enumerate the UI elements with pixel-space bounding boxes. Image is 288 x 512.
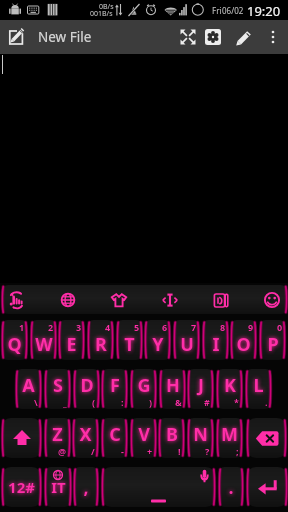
- staticText: R: [95, 332, 107, 357]
- button[interactable]: [130, 418, 157, 458]
- other: Shift: [1, 418, 42, 458]
- staticText: G: [137, 373, 151, 398]
- button[interactable]: [216, 369, 243, 409]
- button[interactable]: [87, 320, 114, 360]
- staticText: !: [178, 445, 181, 457]
- button[interactable]: Cursor: [153, 285, 187, 314]
- button[interactable]: [1, 418, 42, 458]
- button[interactable]: [1, 320, 28, 360]
- staticText: J: [198, 373, 204, 398]
- button[interactable]: Settings: [204, 28, 222, 46]
- button[interactable]: [116, 320, 143, 360]
- staticText: _: [63, 396, 67, 408]
- button[interactable]: [1, 467, 42, 507]
- button[interactable]: More options: [264, 28, 282, 46]
- staticText: E: [66, 332, 77, 357]
- button[interactable]: Clipboard: [204, 285, 238, 314]
- button[interactable]: [73, 467, 99, 507]
- staticText: P: [267, 332, 279, 357]
- staticText: T: [124, 332, 135, 357]
- button[interactable]: [202, 320, 229, 360]
- button[interactable]: [44, 369, 71, 409]
- button[interactable]: [187, 418, 214, 458]
- button[interactable]: [159, 369, 186, 409]
- staticText: C: [109, 422, 121, 447]
- staticText: N: [193, 422, 208, 447]
- staticText: 0: [277, 321, 283, 333]
- staticText: .: [228, 475, 234, 500]
- button[interactable]: Theme: [102, 285, 136, 314]
- button[interactable]: [101, 467, 216, 507]
- other: Enter: [246, 467, 288, 507]
- staticText: I: [212, 332, 220, 357]
- button[interactable]: [1, 285, 288, 314]
- button[interactable]: [218, 467, 244, 507]
- button[interactable]: [246, 467, 288, 507]
- staticText: 12#: [8, 477, 35, 497]
- button[interactable]: [101, 418, 128, 458]
- button[interactable]: [73, 369, 100, 409]
- staticText: :: [121, 396, 124, 408]
- staticText: 8: [220, 321, 226, 333]
- staticText: B: [166, 422, 178, 447]
- button[interactable]: [58, 320, 85, 360]
- staticText: 19:20: [247, 2, 281, 20]
- staticText: New File: [38, 28, 92, 46]
- button[interactable]: [230, 320, 257, 360]
- staticText: 5: [134, 321, 140, 333]
- button[interactable]: [158, 418, 185, 458]
- button[interactable]: [259, 320, 286, 360]
- button[interactable]: [130, 369, 157, 409]
- staticText: &: [175, 396, 182, 408]
- button[interactable]: Language: [51, 285, 85, 314]
- staticText: 001B/s: [90, 9, 113, 19]
- staticText: \: [34, 396, 38, 408]
- button[interactable]: Emoji: [255, 285, 288, 314]
- staticText: Fri: [212, 5, 222, 16]
- staticText: Q: [7, 332, 22, 357]
- button[interactable]: [30, 320, 57, 360]
- button[interactable]: [246, 418, 287, 458]
- staticText: V: [138, 422, 150, 447]
- staticText: Z: [52, 422, 63, 447]
- staticText: R: [95, 332, 107, 357]
- button[interactable]: Edit: [234, 28, 254, 48]
- button[interactable]: [101, 369, 128, 409]
- staticText: D: [80, 373, 94, 398]
- button[interactable]: [245, 369, 272, 409]
- staticText: 7: [191, 321, 197, 333]
- staticText: T: [124, 332, 135, 357]
- staticText: Y: [152, 332, 164, 357]
- staticText: H: [166, 373, 180, 398]
- staticText: U: [180, 332, 194, 357]
- staticText: +: [147, 445, 153, 457]
- staticText: S: [53, 373, 63, 398]
- staticText: O: [236, 332, 251, 357]
- staticText: /: [91, 445, 95, 457]
- staticText: D: [80, 373, 94, 398]
- staticText: 12#: [8, 477, 35, 497]
- other: Backspace: [246, 418, 287, 458]
- staticText: ?: [205, 445, 210, 457]
- button[interactable]: [144, 320, 171, 360]
- staticText: W: [35, 332, 53, 357]
- staticText: ,: [83, 475, 89, 500]
- button[interactable]: [44, 467, 72, 507]
- staticText: *: [234, 396, 239, 408]
- button[interactable]: Fullscreen: [179, 28, 197, 46]
- staticText: 1: [19, 321, 25, 333]
- button[interactable]: [187, 369, 214, 409]
- staticText: V: [138, 422, 150, 447]
- staticText: #: [204, 396, 210, 408]
- button[interactable]: [15, 369, 42, 409]
- button[interactable]: [216, 418, 243, 458]
- staticText: L: [253, 373, 264, 398]
- button[interactable]: [173, 320, 200, 360]
- button[interactable]: [72, 418, 99, 458]
- staticText: 0B/s: [99, 2, 114, 12]
- button[interactable]: [44, 418, 71, 458]
- button[interactable]: Edit file name: [5, 24, 31, 50]
- staticText: K: [224, 373, 236, 398]
- button[interactable]: Input: [0, 285, 34, 314]
- staticText: J: [198, 373, 204, 398]
